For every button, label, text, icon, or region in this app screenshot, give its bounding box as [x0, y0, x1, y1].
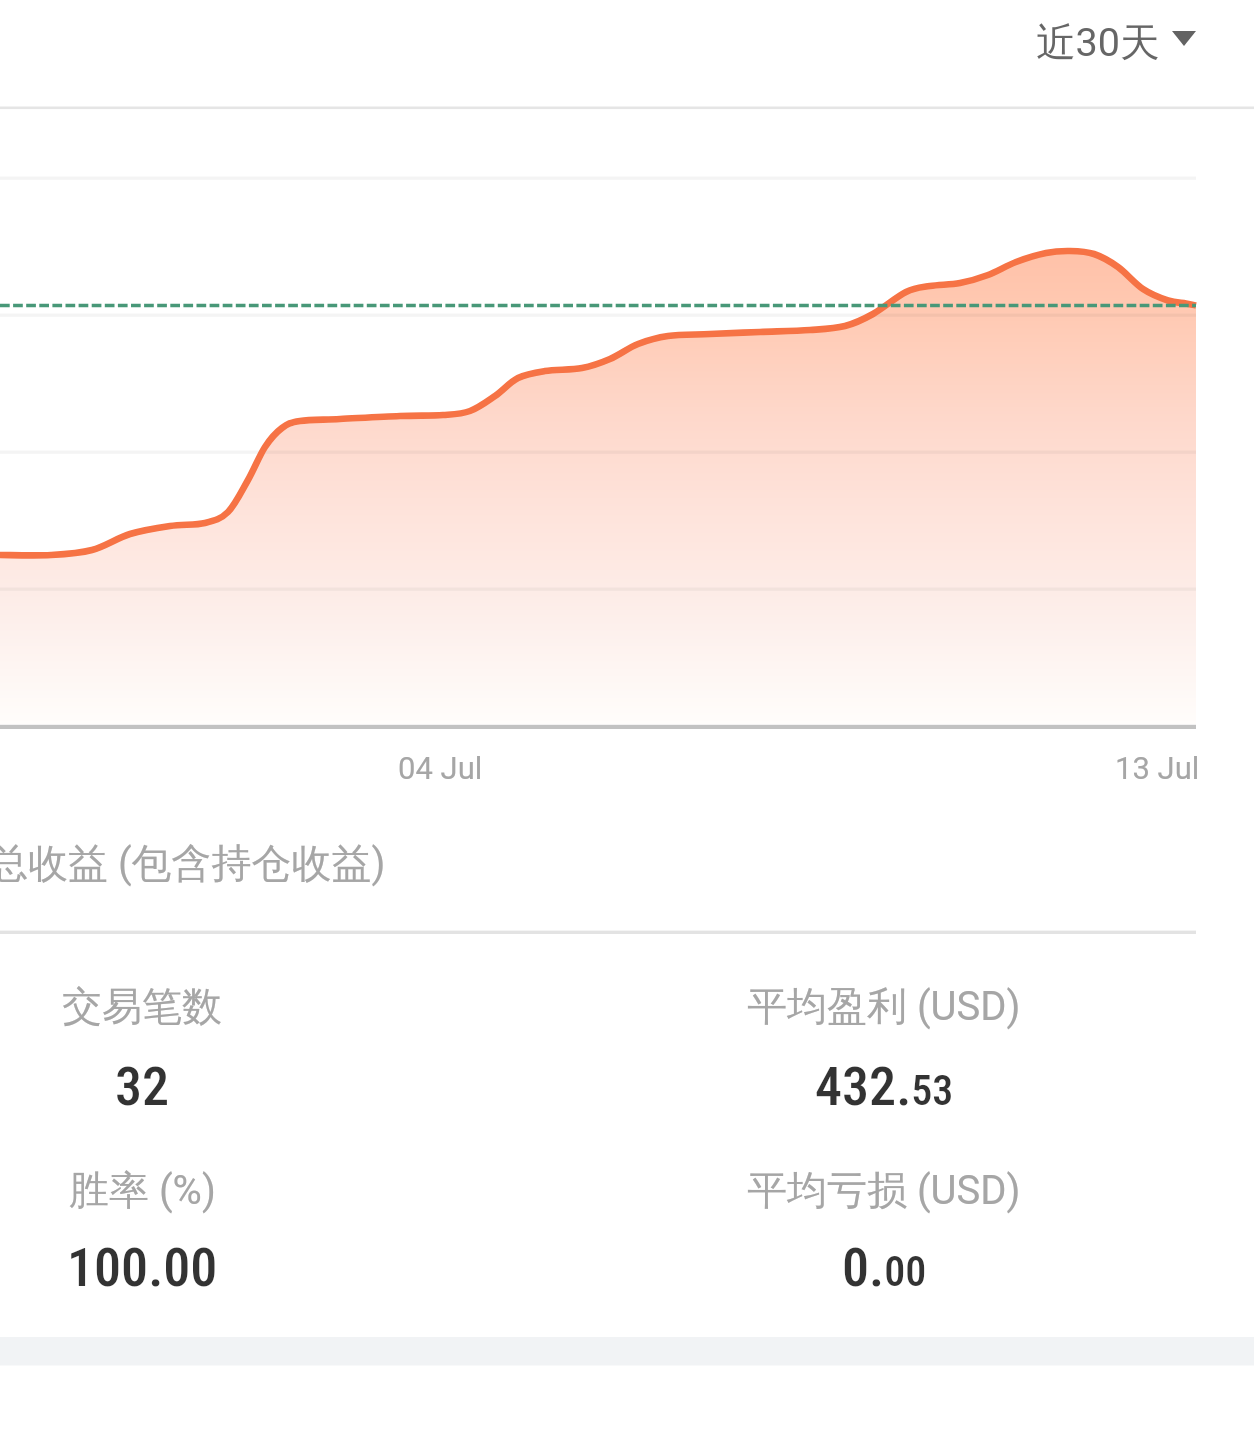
- staticText: 100.00: [67, 1236, 218, 1299]
- button[interactable]: 近30天, 选择时间范围: [1005, 0, 1219, 86]
- staticText: 32: [115, 1055, 170, 1118]
- button[interactable]: [664, 967, 1104, 1129]
- staticText: 近30天: [1036, 18, 1160, 68]
- button[interactable]: [0, 967, 362, 1129]
- staticText: 平均亏损 (USD): [747, 1165, 1021, 1215]
- staticText: 0.00: [842, 1236, 927, 1299]
- staticText: 平均盈利 (USD): [747, 981, 1021, 1031]
- button[interactable]: [0, 1151, 362, 1310]
- staticText: 432.53: [815, 1055, 954, 1118]
- staticText: 胜率 (%): [69, 1165, 216, 1215]
- staticText: 13 Jul: [1115, 750, 1200, 786]
- staticText: 总收益 (包含持仓收益): [0, 838, 386, 888]
- button[interactable]: [664, 1151, 1104, 1310]
- staticText: 交易笔数: [62, 981, 222, 1031]
- staticText: 04 Jul: [398, 750, 483, 786]
